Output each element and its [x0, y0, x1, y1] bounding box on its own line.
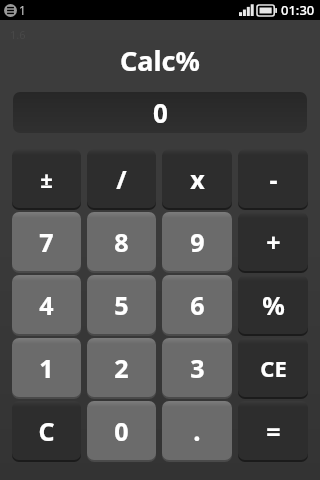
- button[interactable]: CE: [238, 338, 308, 397]
- staticText: -: [269, 162, 278, 196]
- button[interactable]: 8: [87, 212, 156, 271]
- button[interactable]: %: [238, 275, 308, 334]
- button[interactable]: 1: [12, 338, 81, 397]
- button[interactable]: +: [238, 212, 308, 271]
- button[interactable]: /: [87, 149, 156, 208]
- staticText: +: [266, 225, 281, 259]
- staticText: =: [266, 414, 281, 448]
- button[interactable]: 7: [12, 212, 81, 271]
- staticText: x: [190, 162, 205, 196]
- button[interactable]: -: [238, 149, 308, 208]
- staticText: 0: [114, 414, 129, 448]
- staticText: 8: [114, 225, 129, 259]
- button[interactable]: .: [162, 401, 232, 460]
- button[interactable]: 0: [87, 401, 156, 460]
- button[interactable]: 3: [162, 338, 232, 397]
- staticText: ±: [40, 164, 53, 194]
- button[interactable]: 2: [87, 338, 156, 397]
- button[interactable]: x: [162, 149, 232, 208]
- staticText: CE: [260, 353, 287, 383]
- staticText: 1: [19, 2, 26, 18]
- staticText: 7: [39, 225, 54, 259]
- staticText: /: [116, 162, 127, 196]
- staticText: 2: [114, 351, 129, 385]
- button[interactable]: ±: [12, 149, 81, 208]
- staticText: 5: [114, 288, 129, 322]
- staticText: 4: [39, 288, 54, 322]
- staticText: %: [262, 288, 285, 322]
- staticText: 6: [190, 288, 205, 322]
- button[interactable]: 5: [87, 275, 156, 334]
- staticText: 0: [153, 95, 168, 130]
- staticText: Calc%: [120, 42, 200, 79]
- staticText: 9: [190, 225, 205, 259]
- button[interactable]: 9: [162, 212, 232, 271]
- button[interactable]: =: [238, 401, 308, 460]
- button[interactable]: 0: [13, 92, 307, 133]
- button[interactable]: 6: [162, 275, 232, 334]
- staticText: 3: [190, 351, 205, 385]
- staticText: .: [193, 413, 201, 448]
- staticText: 01:30: [281, 1, 315, 19]
- button[interactable]: 4: [12, 275, 81, 334]
- staticText: 1.6: [10, 27, 26, 42]
- staticText: 1: [39, 351, 54, 385]
- staticText: C: [38, 414, 55, 448]
- button[interactable]: C: [12, 401, 81, 460]
